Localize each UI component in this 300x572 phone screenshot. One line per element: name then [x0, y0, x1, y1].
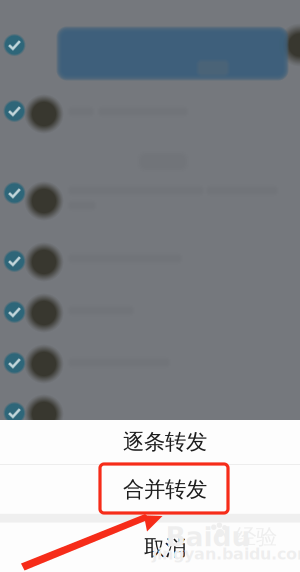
button[interactable]: 取消 — [0, 523, 300, 572]
staticText: 取消 — [144, 534, 186, 561]
button[interactable]: 合并转发 — [0, 465, 300, 514]
staticText: 合并转发 — [123, 476, 207, 503]
staticText: 逐条转发 — [123, 429, 207, 455]
staticText: 经验 — [235, 524, 277, 550]
staticText: Baidu — [165, 521, 250, 552]
staticText: jingyan.baidu.com — [152, 545, 300, 563]
button[interactable]: 逐条转发 — [0, 420, 300, 464]
